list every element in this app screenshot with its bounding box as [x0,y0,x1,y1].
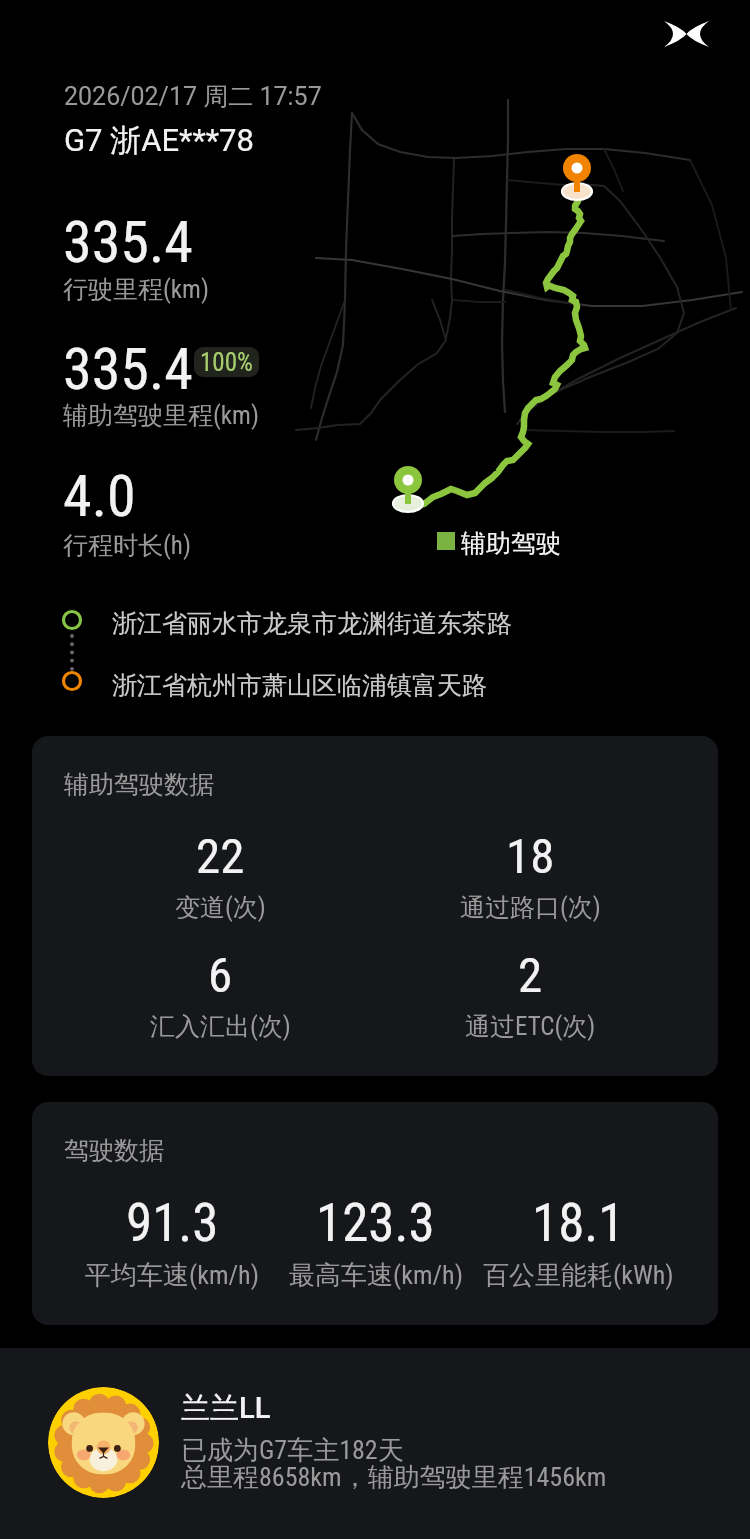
staticText: 18 [506,828,555,885]
staticText: 浙江省丽水市龙泉市龙渊街道东茶路 [112,608,512,639]
staticText: 91.3 [126,1192,219,1254]
staticText: 百公里能耗(kWh) [483,1259,674,1292]
staticText: 2 [518,947,543,1004]
button[interactable]: 兰兰LL [0,1348,750,1539]
staticText: G7 浙AE***78 [64,121,254,160]
staticText: 总里程8658km，辅助驾驶里程1456km [181,1461,607,1494]
staticText: 335.4 [63,208,193,276]
staticText: 驾驶数据 [64,1135,164,1166]
button[interactable]: Trip route map [0,0,750,590]
staticText: 4.0 [63,462,136,530]
staticText: 辅助驾驶里程(km) [63,400,259,431]
staticText: 2026/02/17 周二 17:57 [64,81,322,112]
button[interactable]: 辅助驾驶数据 [32,736,718,1076]
staticText: 平均车速(km/h) [85,1259,259,1292]
staticText: 335.4 [63,335,193,403]
staticText: 汇入汇出(次) [150,1011,291,1042]
staticText: 行驶里程(km) [63,274,209,305]
staticText: 通过路口(次) [460,892,601,923]
staticText: 浙江省杭州市萧山区临浦镇富天路 [112,670,487,701]
staticText: 100% [200,348,253,377]
staticText: 通过ETC(次) [465,1011,596,1042]
staticText: 18.1 [532,1192,625,1254]
button[interactable]: Close [657,5,715,63]
staticText: 6 [208,947,233,1004]
staticText: 22 [196,828,245,885]
button[interactable]: 驾驶数据 [32,1102,718,1325]
staticText: 变道(次) [175,892,266,923]
staticText: 兰兰LL [181,1390,271,1427]
button[interactable]: 浙江省丽水市龙泉市龙渊街道东茶路 [0,596,750,716]
staticText: 已成为G7车主182天 [181,1434,404,1467]
staticText: 辅助驾驶数据 [64,769,214,800]
staticText: 123.3 [316,1192,435,1254]
staticText: 行程时长(h) [63,530,191,561]
staticText: 最高车速(km/h) [289,1259,463,1292]
staticText: 辅助驾驶 [461,528,561,559]
